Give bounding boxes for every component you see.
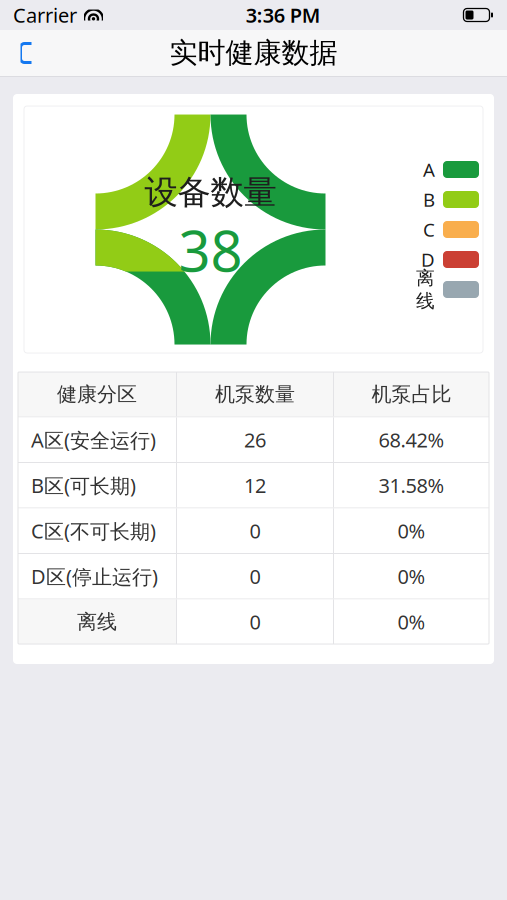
staticText: 0% — [397, 517, 425, 544]
staticText: C区(不可长期) — [31, 517, 156, 544]
staticText: B区(可长期) — [31, 472, 136, 499]
staticText: 68.42% — [378, 426, 444, 453]
staticText: 实时健康数据 — [169, 36, 337, 70]
staticText: 健康分区 — [57, 382, 137, 407]
staticText: 3:36 PM — [246, 2, 321, 28]
staticText: 机泵数量 — [215, 382, 295, 407]
staticText: 0% — [397, 608, 425, 635]
staticText: Carrier — [13, 2, 77, 28]
staticText: 0 — [249, 517, 260, 544]
staticText: 38 — [178, 213, 242, 287]
staticText: A区(安全运行) — [31, 426, 156, 453]
staticText: B — [423, 187, 435, 212]
button[interactable]: Back — [0, 30, 52, 76]
staticText: 26 — [244, 426, 266, 453]
staticText: 31.58% — [378, 472, 444, 499]
staticText: 0 — [249, 608, 260, 635]
staticText: 离线 — [416, 267, 435, 312]
staticText: A — [423, 157, 435, 182]
staticText: 0 — [249, 563, 260, 590]
staticText: D — [421, 247, 435, 272]
staticText: 设备数量 — [144, 172, 276, 213]
staticText: 机泵占比 — [371, 382, 451, 407]
staticText: C — [423, 217, 435, 242]
staticText: 离线 — [77, 609, 117, 634]
staticText: 12 — [244, 472, 266, 499]
staticText: 0% — [397, 563, 425, 590]
staticText: D区(停止运行) — [31, 563, 158, 590]
